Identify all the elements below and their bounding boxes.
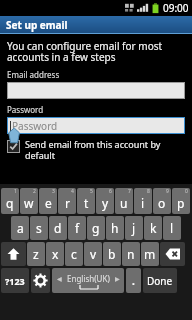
button[interactable]: Shift	[1, 242, 26, 266]
staticText: Email address	[7, 69, 60, 80]
staticText: h	[111, 220, 119, 236]
staticText: 7	[128, 188, 131, 195]
staticText: y	[102, 195, 109, 211]
staticText: b	[108, 246, 116, 262]
button[interactable]: 5	[77, 188, 95, 214]
staticText: n	[127, 246, 135, 262]
button[interactable]: f	[68, 216, 86, 240]
staticText: 8	[147, 188, 150, 195]
staticText: English(UK)	[67, 273, 110, 284]
staticText: 1	[14, 188, 17, 195]
button[interactable]: k	[144, 216, 162, 240]
button[interactable]: x	[46, 242, 64, 266]
button[interactable]: 8	[134, 188, 152, 214]
staticText: Send email from this account by default	[25, 138, 161, 161]
staticText: c	[71, 246, 77, 262]
staticText: 3	[52, 188, 55, 195]
staticText: p	[177, 195, 185, 211]
staticText: v	[90, 246, 97, 262]
button[interactable]: 9	[153, 188, 171, 214]
button[interactable]: 4	[58, 188, 76, 214]
staticText: g	[92, 220, 100, 236]
button[interactable]	[7, 140, 20, 153]
button[interactable]: ?123	[1, 268, 29, 293]
button[interactable]: l	[163, 216, 181, 240]
staticText: k	[150, 220, 157, 236]
staticText: .	[132, 274, 135, 288]
button[interactable]: g	[87, 216, 105, 240]
button[interactable]: Delete	[160, 242, 185, 266]
staticText: ◀	[57, 275, 62, 282]
staticText: Password	[7, 104, 44, 115]
staticText: e	[45, 195, 52, 211]
staticText: z	[33, 246, 39, 262]
button[interactable]: m	[141, 242, 159, 266]
button[interactable]: Done	[143, 268, 177, 293]
staticText: 09:00	[163, 1, 189, 15]
staticText: d	[54, 220, 62, 236]
button[interactable]: b	[103, 242, 121, 266]
button[interactable]: .	[126, 268, 141, 293]
staticText: w	[24, 195, 34, 211]
button[interactable]	[7, 82, 185, 99]
staticText: 2	[33, 188, 36, 195]
staticText: Password	[12, 119, 58, 133]
staticText: o	[158, 195, 166, 211]
staticText: 0	[185, 188, 188, 195]
staticText: s	[36, 220, 42, 236]
staticText: ▶	[115, 275, 120, 282]
staticText: i	[141, 195, 145, 211]
staticText: r	[65, 195, 70, 211]
button[interactable]: j	[125, 216, 143, 240]
button[interactable]: ◀	[52, 268, 124, 293]
staticText: a	[17, 220, 24, 236]
staticText: j	[132, 220, 136, 236]
staticText: Set up email	[6, 18, 68, 32]
staticText: u	[120, 195, 128, 211]
staticText: 4	[71, 188, 74, 195]
button[interactable]: v	[84, 242, 102, 266]
button[interactable]: 2	[20, 188, 38, 214]
staticText: 6	[109, 188, 112, 195]
button[interactable]: 1	[1, 188, 19, 214]
staticText: l	[170, 220, 174, 236]
staticText: m	[144, 246, 156, 262]
staticText: t	[84, 195, 89, 211]
staticText: q	[6, 195, 14, 211]
button[interactable]: Password	[7, 117, 185, 134]
staticText: x	[52, 246, 59, 262]
button[interactable]: 6	[96, 188, 114, 214]
button[interactable]: n	[122, 242, 140, 266]
button[interactable]: Settings	[31, 268, 50, 293]
button[interactable]: 0	[172, 188, 190, 214]
button[interactable]: a	[11, 216, 29, 240]
staticText: ?123	[5, 275, 25, 287]
staticText: 9	[166, 188, 169, 195]
button[interactable]: 3	[39, 188, 57, 214]
button[interactable]: z	[27, 242, 45, 266]
button[interactable]: 7	[115, 188, 133, 214]
button[interactable]: d	[49, 216, 67, 240]
staticText: 5	[90, 188, 93, 195]
button[interactable]: s	[30, 216, 48, 240]
button[interactable]: c	[65, 242, 83, 266]
staticText: f	[75, 220, 80, 236]
staticText: Done	[147, 274, 173, 288]
staticText: You can configure email for most account…	[7, 39, 163, 64]
button[interactable]: h	[106, 216, 124, 240]
